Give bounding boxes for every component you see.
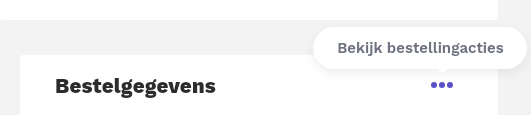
button[interactable]: Meer bestellingacties: [425, 74, 459, 96]
button[interactable]: Bekijk bestellingacties: [313, 27, 527, 69]
staticText: Bestelgegevens: [55, 74, 216, 98]
staticText: Bekijk bestellingacties: [337, 39, 504, 57]
